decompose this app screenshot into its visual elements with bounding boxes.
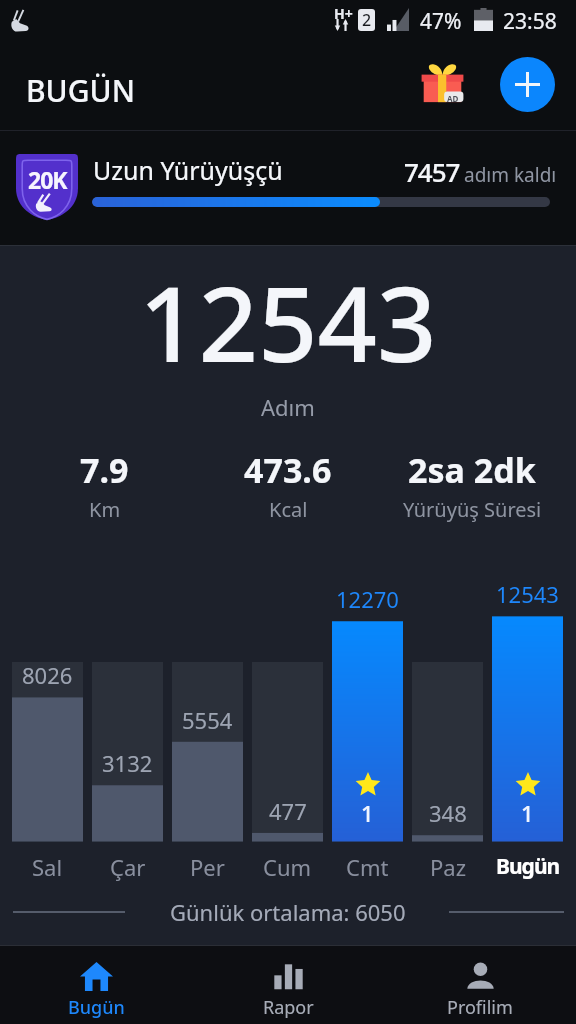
- staticText: 7.9: [80, 447, 129, 493]
- button[interactable]: Bugün: [0, 946, 192, 1024]
- staticText: 348: [429, 798, 467, 824]
- staticText: Profilim: [447, 995, 513, 1020]
- staticText: Bugün: [496, 852, 560, 881]
- staticText: 12543: [496, 579, 559, 605]
- staticText: 23:58: [503, 7, 557, 36]
- staticText: Çar: [110, 852, 146, 882]
- staticText: Yürüyüş Süresi: [403, 496, 542, 523]
- staticText: 1: [521, 798, 534, 828]
- button[interactable]: Ekle: [500, 57, 555, 112]
- button[interactable]: Reklam hediye: [419, 57, 471, 109]
- staticText: Rapor: [263, 995, 314, 1020]
- staticText: AD: [447, 93, 459, 104]
- staticText: Bugün: [68, 995, 125, 1020]
- button[interactable]: Profilim: [384, 946, 576, 1024]
- staticText: 2sa 2dk: [408, 447, 536, 493]
- staticText: 12543: [139, 251, 437, 393]
- staticText: 477: [269, 796, 307, 822]
- staticText: Kcal: [269, 496, 308, 523]
- staticText: 7457: [404, 154, 460, 189]
- staticText: 5554: [182, 705, 233, 731]
- staticText: Adım: [261, 392, 315, 422]
- staticText: Cmt: [346, 852, 389, 882]
- staticText: 1: [361, 798, 374, 828]
- staticText: H+: [334, 4, 353, 23]
- staticText: 3132: [102, 748, 153, 774]
- staticText: Cum: [263, 852, 312, 882]
- staticText: 2: [362, 9, 372, 31]
- staticText: 47%: [420, 7, 462, 36]
- button[interactable]: 20K: [0, 131, 576, 245]
- staticText: BUGÜN: [26, 70, 135, 111]
- staticText: Km: [89, 496, 121, 523]
- staticText: adım kaldı: [464, 162, 557, 188]
- staticText: 8026: [22, 660, 73, 686]
- staticText: 20K: [28, 164, 67, 195]
- staticText: Per: [190, 852, 225, 882]
- button[interactable]: Rapor: [192, 946, 384, 1024]
- staticText: 473.6: [244, 447, 332, 493]
- staticText: Paz: [430, 852, 466, 882]
- staticText: Sal: [32, 852, 63, 882]
- staticText: 12270: [336, 584, 399, 610]
- staticText: Günlük ortalama: 6050: [170, 897, 406, 927]
- staticText: Uzun Yürüyüşçü: [93, 153, 283, 187]
